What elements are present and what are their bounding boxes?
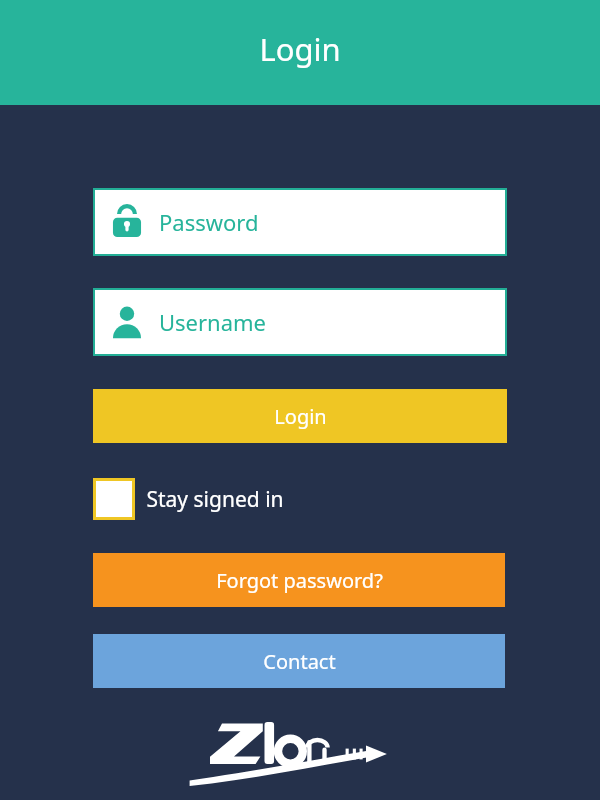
other: Password <box>109 204 145 240</box>
staticText: Login <box>274 403 327 430</box>
staticText: Login <box>259 28 341 70</box>
button[interactable]: Username <box>93 288 507 356</box>
staticText: Username <box>159 307 267 337</box>
button[interactable]: Forgot password? <box>93 553 505 607</box>
button[interactable]: Contact <box>93 634 505 688</box>
staticText: Password <box>159 207 259 237</box>
staticText: Stay signed in <box>146 485 284 514</box>
button[interactable]: Stay signed in <box>93 478 507 520</box>
button[interactable]: Login <box>93 389 507 443</box>
staticText: Contact <box>263 648 336 675</box>
other: Username <box>109 304 145 340</box>
other: Zion logo <box>180 706 420 786</box>
button[interactable]: Password <box>93 188 507 256</box>
staticText: Forgot password? <box>216 567 383 594</box>
